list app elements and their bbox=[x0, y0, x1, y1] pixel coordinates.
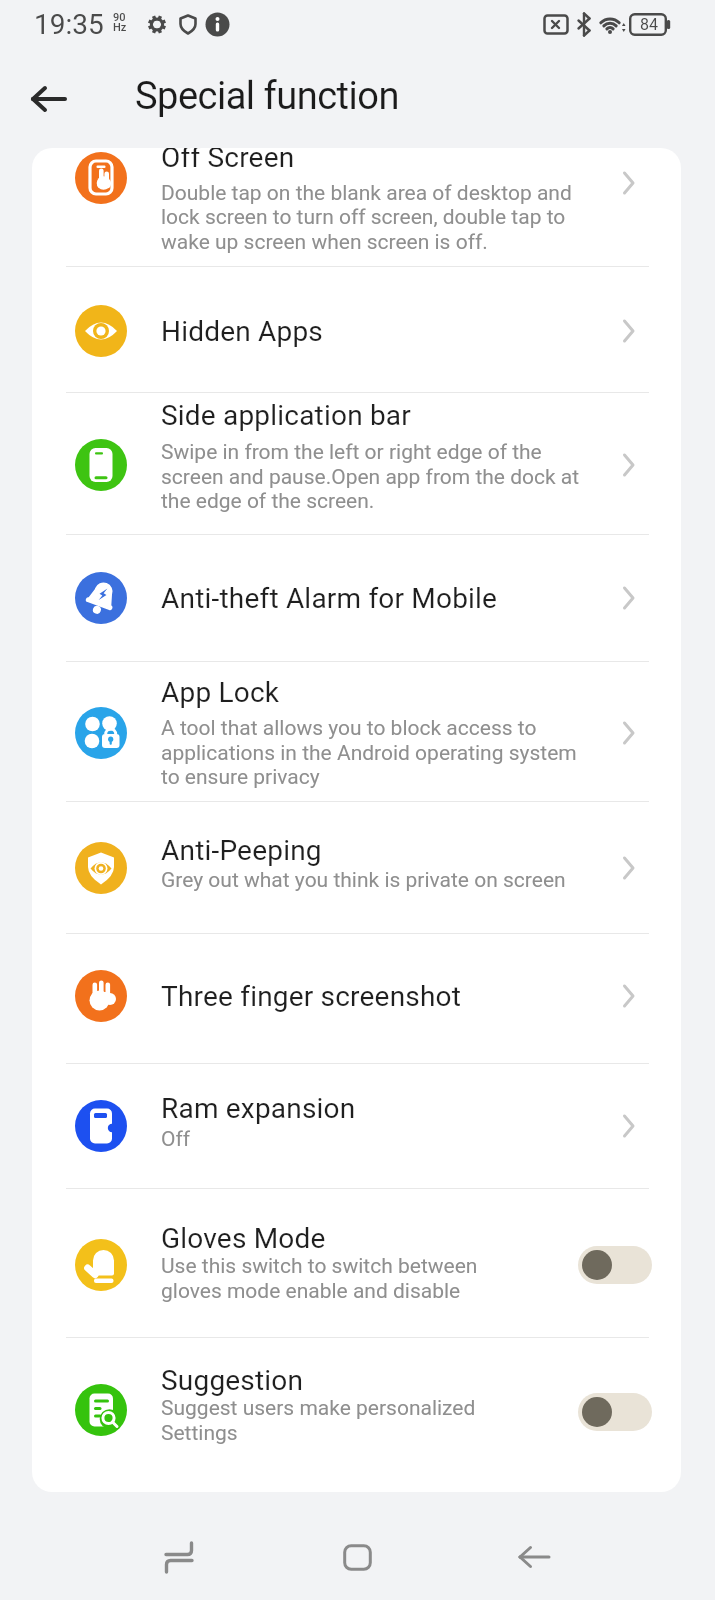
staticText: the edge of the screen. bbox=[161, 489, 375, 514]
staticText: Ram expansion bbox=[161, 1092, 356, 1125]
staticText: screen and pause.Open app from the dock … bbox=[161, 465, 580, 490]
staticText: Swipe in from the left or right edge of … bbox=[161, 440, 542, 465]
button[interactable] bbox=[32, 933, 681, 1063]
button[interactable] bbox=[158, 1541, 198, 1575]
button[interactable] bbox=[32, 534, 681, 661]
button[interactable] bbox=[578, 1393, 652, 1431]
staticText: Grey out what you think is private on sc… bbox=[161, 868, 566, 893]
button[interactable] bbox=[518, 1545, 552, 1569]
button[interactable] bbox=[32, 392, 681, 534]
button[interactable] bbox=[32, 1188, 681, 1337]
button[interactable] bbox=[32, 661, 681, 801]
staticText: Three finger screenshot bbox=[161, 980, 462, 1013]
staticText: Settings bbox=[161, 1421, 238, 1446]
button[interactable] bbox=[30, 85, 68, 113]
button[interactable] bbox=[343, 1544, 372, 1571]
staticText: 84 bbox=[631, 15, 667, 34]
button[interactable] bbox=[32, 266, 681, 392]
button[interactable] bbox=[32, 148, 681, 266]
staticText: Suggestion bbox=[161, 1364, 304, 1397]
staticText: Use this switch to switch between bbox=[161, 1254, 478, 1279]
button[interactable] bbox=[32, 1063, 681, 1188]
staticText: Side application bar bbox=[161, 399, 411, 432]
staticText: 19:35 bbox=[34, 8, 104, 41]
button[interactable] bbox=[578, 1246, 652, 1284]
button[interactable] bbox=[32, 801, 681, 933]
staticText: Hidden Apps bbox=[161, 315, 323, 348]
staticText: Suggest users make personalized bbox=[161, 1396, 476, 1421]
staticText: wake up screen when screen is off. bbox=[161, 230, 488, 255]
staticText: Gloves Mode bbox=[161, 1222, 326, 1255]
staticText: Double tap on the blank area of desktop … bbox=[161, 181, 572, 206]
staticText: App Lock bbox=[161, 676, 280, 709]
staticText: lock screen to turn off screen, double t… bbox=[161, 205, 566, 230]
staticText: 90 bbox=[113, 11, 126, 24]
staticText: Anti-theft Alarm for Mobile bbox=[161, 582, 498, 615]
staticText: gloves mode enable and disable bbox=[161, 1279, 461, 1304]
staticText: Hz bbox=[113, 21, 127, 34]
staticText: Anti-Peeping bbox=[161, 834, 322, 867]
staticText: Special function bbox=[135, 74, 399, 119]
staticText: Off Screen bbox=[161, 148, 295, 174]
staticText: applications in the Android operating sy… bbox=[161, 741, 577, 766]
staticText: A tool that allows you to block access t… bbox=[161, 716, 537, 741]
staticText: Off bbox=[161, 1127, 191, 1152]
staticText: to ensure privacy bbox=[161, 765, 320, 790]
button[interactable] bbox=[32, 1337, 681, 1492]
